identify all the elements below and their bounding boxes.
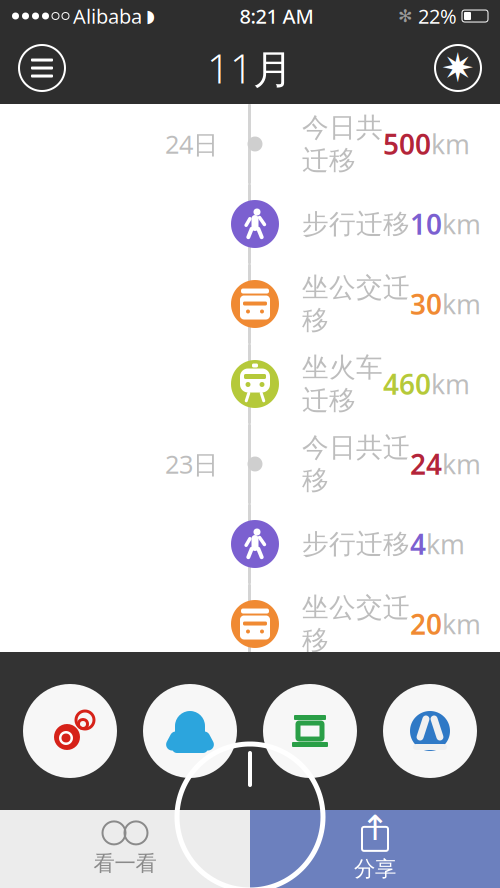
button[interactable]: QQ <box>140 681 240 781</box>
staticText: km <box>442 446 481 482</box>
staticText: 24日 <box>165 127 218 161</box>
staticText: km <box>426 526 465 562</box>
staticText: km <box>431 366 470 402</box>
staticText: km <box>442 606 481 642</box>
staticText: ✻ <box>398 6 413 26</box>
staticText: 460 <box>383 365 431 403</box>
staticText: 22% <box>418 3 457 29</box>
staticText: Alibaba <box>73 3 142 29</box>
staticText: 坐火车迁移 <box>302 351 383 417</box>
staticText: 3 <box>410 765 426 803</box>
button[interactable]: Douban <box>260 681 360 781</box>
staticText: 8:21 AM <box>239 3 313 29</box>
staticText: 22日 <box>165 687 218 721</box>
staticText: km <box>431 126 470 162</box>
staticText: 4 <box>410 525 426 563</box>
staticText: 看一看 <box>93 850 156 877</box>
staticText: 20 <box>410 605 442 643</box>
staticText: 11月 <box>207 41 293 94</box>
staticText: 今日共迁移 <box>302 111 383 177</box>
button[interactable]: Menu <box>14 40 70 96</box>
staticText: 23日 <box>165 447 218 481</box>
staticText: 分享 <box>354 856 396 882</box>
staticText: km <box>442 286 481 322</box>
staticText: 坐公交迁移 <box>302 591 410 657</box>
staticText: 步行迁移 <box>302 768 410 800</box>
button[interactable]: Settings <box>430 40 486 96</box>
button[interactable]: Weibo <box>20 681 120 781</box>
button[interactable]: ↑ <box>250 810 500 888</box>
staticText: 步行迁移 <box>302 528 410 560</box>
staticText: 3 <box>437 685 453 723</box>
staticText: 10 <box>410 205 442 243</box>
staticText: 步行迁移 <box>302 208 410 240</box>
staticText: 今日共迁移 <box>302 431 410 497</box>
button[interactable]: Renren <box>380 681 480 781</box>
staticText: 500 <box>383 125 431 163</box>
staticText: ✷ <box>441 45 475 91</box>
staticText: ◗ <box>146 6 155 26</box>
staticText: km <box>426 766 465 802</box>
staticText: km <box>442 206 481 242</box>
staticText: 30 <box>410 285 442 323</box>
button[interactable]: 看一看 <box>0 810 250 888</box>
staticText: ↑ <box>360 808 389 847</box>
staticText: 今日共迁移 <box>302 688 437 720</box>
staticText: 坐公交迁移 <box>302 271 410 337</box>
staticText: 24 <box>410 445 442 483</box>
staticText: km <box>453 686 492 722</box>
